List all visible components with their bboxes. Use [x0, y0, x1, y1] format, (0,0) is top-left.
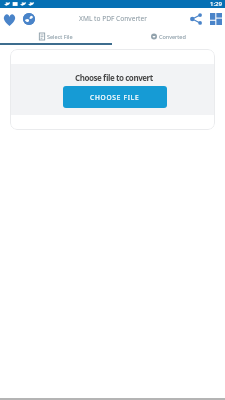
staticText: 1:29 — [210, 0, 222, 8]
button[interactable]: Converted — [112, 29, 225, 43]
button[interactable]: CHOOSE FILE — [63, 86, 167, 108]
button[interactable]: Share — [187, 10, 205, 28]
staticText: Converted — [159, 33, 186, 40]
staticText: XML to PDF Converter — [79, 14, 147, 23]
staticText: CHOOSE FILE — [90, 93, 140, 102]
button[interactable]: Language — [20, 10, 38, 28]
button[interactable]: More apps — [207, 10, 225, 28]
staticText: Select File — [47, 33, 73, 40]
button[interactable]: Select File — [0, 29, 112, 43]
button[interactable]: Favourites — [1, 10, 19, 28]
staticText: Choose file to convert — [75, 72, 153, 83]
